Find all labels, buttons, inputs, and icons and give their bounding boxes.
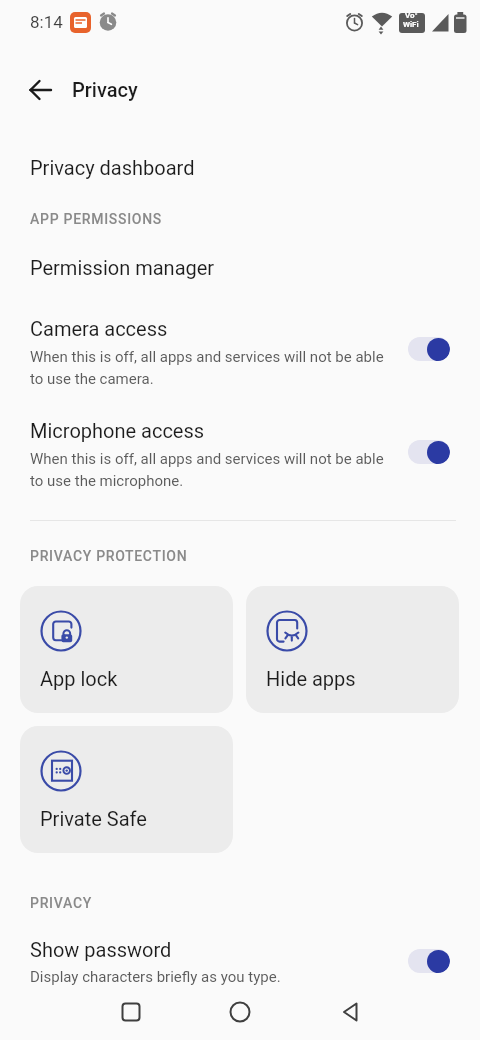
staticText: App lock [40, 667, 118, 690]
staticText: Display characters briefly as you type. [30, 968, 281, 986]
button[interactable]: Hide apps [246, 586, 459, 713]
staticText: Microphone access [30, 419, 205, 442]
staticText: Privacy [72, 78, 138, 101]
button[interactable] [107, 988, 155, 1036]
staticText: WiFi [403, 20, 419, 29]
staticText: Hide apps [266, 667, 356, 690]
staticText: Privacy dashboard [30, 156, 195, 179]
button[interactable]: Permission manager [0, 240, 480, 296]
staticText: to use the camera. [30, 370, 154, 388]
button[interactable] [408, 337, 450, 361]
staticText: When this is off, all apps and services … [30, 450, 384, 468]
staticText: Show password [30, 938, 172, 961]
button[interactable]: App lock [20, 586, 233, 713]
staticText: Camera access [30, 317, 168, 340]
staticText: PRIVACY [30, 895, 92, 911]
staticText: to use the microphone. [30, 472, 184, 490]
button[interactable] [408, 949, 450, 973]
staticText: PRIVACY PROTECTION [30, 548, 188, 564]
staticText: Private Safe [40, 807, 147, 830]
staticText: Permission manager [30, 256, 215, 279]
staticText: 8:14 [30, 12, 63, 32]
button[interactable] [14, 64, 66, 116]
staticText: APP PERMISSIONS [30, 211, 162, 227]
button[interactable]: Microphone access [0, 410, 480, 502]
button[interactable] [216, 988, 264, 1036]
staticText: Vo° [405, 13, 418, 20]
button[interactable]: Camera access [0, 308, 480, 400]
button[interactable]: Show password [0, 930, 480, 992]
button[interactable] [408, 440, 450, 464]
button[interactable] [327, 988, 375, 1036]
button[interactable]: Private Safe [20, 726, 233, 853]
staticText: When this is off, all apps and services … [30, 348, 384, 366]
button[interactable]: Privacy dashboard [0, 140, 480, 196]
